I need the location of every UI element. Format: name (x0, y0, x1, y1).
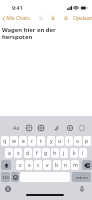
staticText: q (3, 138, 7, 145)
button[interactable]: 123 (1, 172, 10, 182)
button[interactable]: t (37, 136, 45, 146)
button[interactable]: Emoji (11, 172, 19, 182)
button[interactable]: h (51, 148, 59, 158)
button[interactable]: z (16, 160, 24, 170)
button[interactable]: Alle Chats (2, 15, 30, 22)
button[interactable]: Apps (36, 123, 45, 132)
staticText: i (68, 138, 70, 145)
staticText: return (76, 175, 88, 180)
staticText: e (22, 138, 25, 145)
button[interactable]: g (42, 148, 50, 158)
staticText: f (36, 150, 38, 157)
staticText: u (58, 138, 62, 145)
button[interactable]: f (33, 148, 41, 158)
button[interactable]: b (53, 160, 61, 170)
button[interactable]: c (34, 160, 42, 170)
staticText: d (26, 150, 30, 157)
staticText: 123 (2, 175, 9, 180)
button[interactable]: e (19, 136, 27, 146)
button[interactable]: l (79, 148, 87, 158)
button[interactable]: w (10, 136, 18, 146)
staticText: b (55, 162, 59, 169)
button[interactable]: y (47, 136, 55, 146)
button[interactable]: Photos (52, 123, 61, 132)
button[interactable]: Attach (65, 123, 74, 132)
button[interactable]: n (62, 160, 70, 170)
button[interactable]: p (83, 136, 91, 146)
staticText: w (12, 138, 16, 145)
button[interactable]: k (70, 148, 78, 158)
staticText: Alle Chats (6, 15, 30, 22)
button[interactable]: j (60, 148, 68, 158)
staticText: t (40, 138, 42, 145)
staticText: v (46, 162, 49, 169)
button[interactable]: o (74, 136, 82, 146)
button[interactable]: r (28, 136, 36, 146)
button[interactable]: m (71, 160, 79, 170)
staticText: x (28, 162, 31, 169)
staticText: Wagen hier en der herspoten (2, 26, 56, 41)
button[interactable]: Dictation (78, 185, 85, 192)
staticText: Aa (13, 124, 20, 131)
staticText: k (73, 150, 76, 157)
button[interactable]: Text formatting (12, 123, 21, 132)
button[interactable]: q (1, 136, 9, 146)
staticText: p (85, 138, 89, 145)
button[interactable]: More (77, 123, 86, 132)
staticText: s (17, 150, 20, 157)
button[interactable]: return (72, 172, 91, 182)
staticText: h (53, 150, 57, 157)
button[interactable]: Photo (38, 15, 44, 21)
button[interactable]: Backspace (82, 160, 92, 170)
button[interactable]: u (56, 136, 64, 146)
button[interactable]: s (14, 148, 22, 158)
staticText: 9:41 (12, 4, 23, 10)
button[interactable]: d (24, 148, 32, 158)
staticText: c (37, 162, 40, 169)
button[interactable]: Stickers (24, 123, 33, 132)
staticText: z (19, 162, 22, 169)
staticText: j (63, 150, 65, 157)
staticText: m (73, 162, 78, 169)
staticText: o (76, 138, 80, 145)
button[interactable]: a (5, 148, 13, 158)
button[interactable]: Contact (63, 15, 69, 21)
button[interactable]: Switch language (4, 185, 11, 192)
staticText: r (31, 138, 34, 145)
button[interactable]: Opslaan (73, 15, 92, 22)
staticText: n (64, 162, 68, 169)
button[interactable]: Camera (50, 15, 56, 21)
staticText: y (50, 138, 53, 145)
button[interactable]: Shift (1, 160, 11, 170)
staticText: g (44, 150, 48, 157)
staticText: a (8, 150, 11, 157)
button[interactable]: x (25, 160, 33, 170)
button[interactable]: i (65, 136, 73, 146)
staticText: Opslaan (73, 15, 92, 22)
button[interactable]: v (43, 160, 51, 170)
staticText: l (82, 150, 84, 157)
